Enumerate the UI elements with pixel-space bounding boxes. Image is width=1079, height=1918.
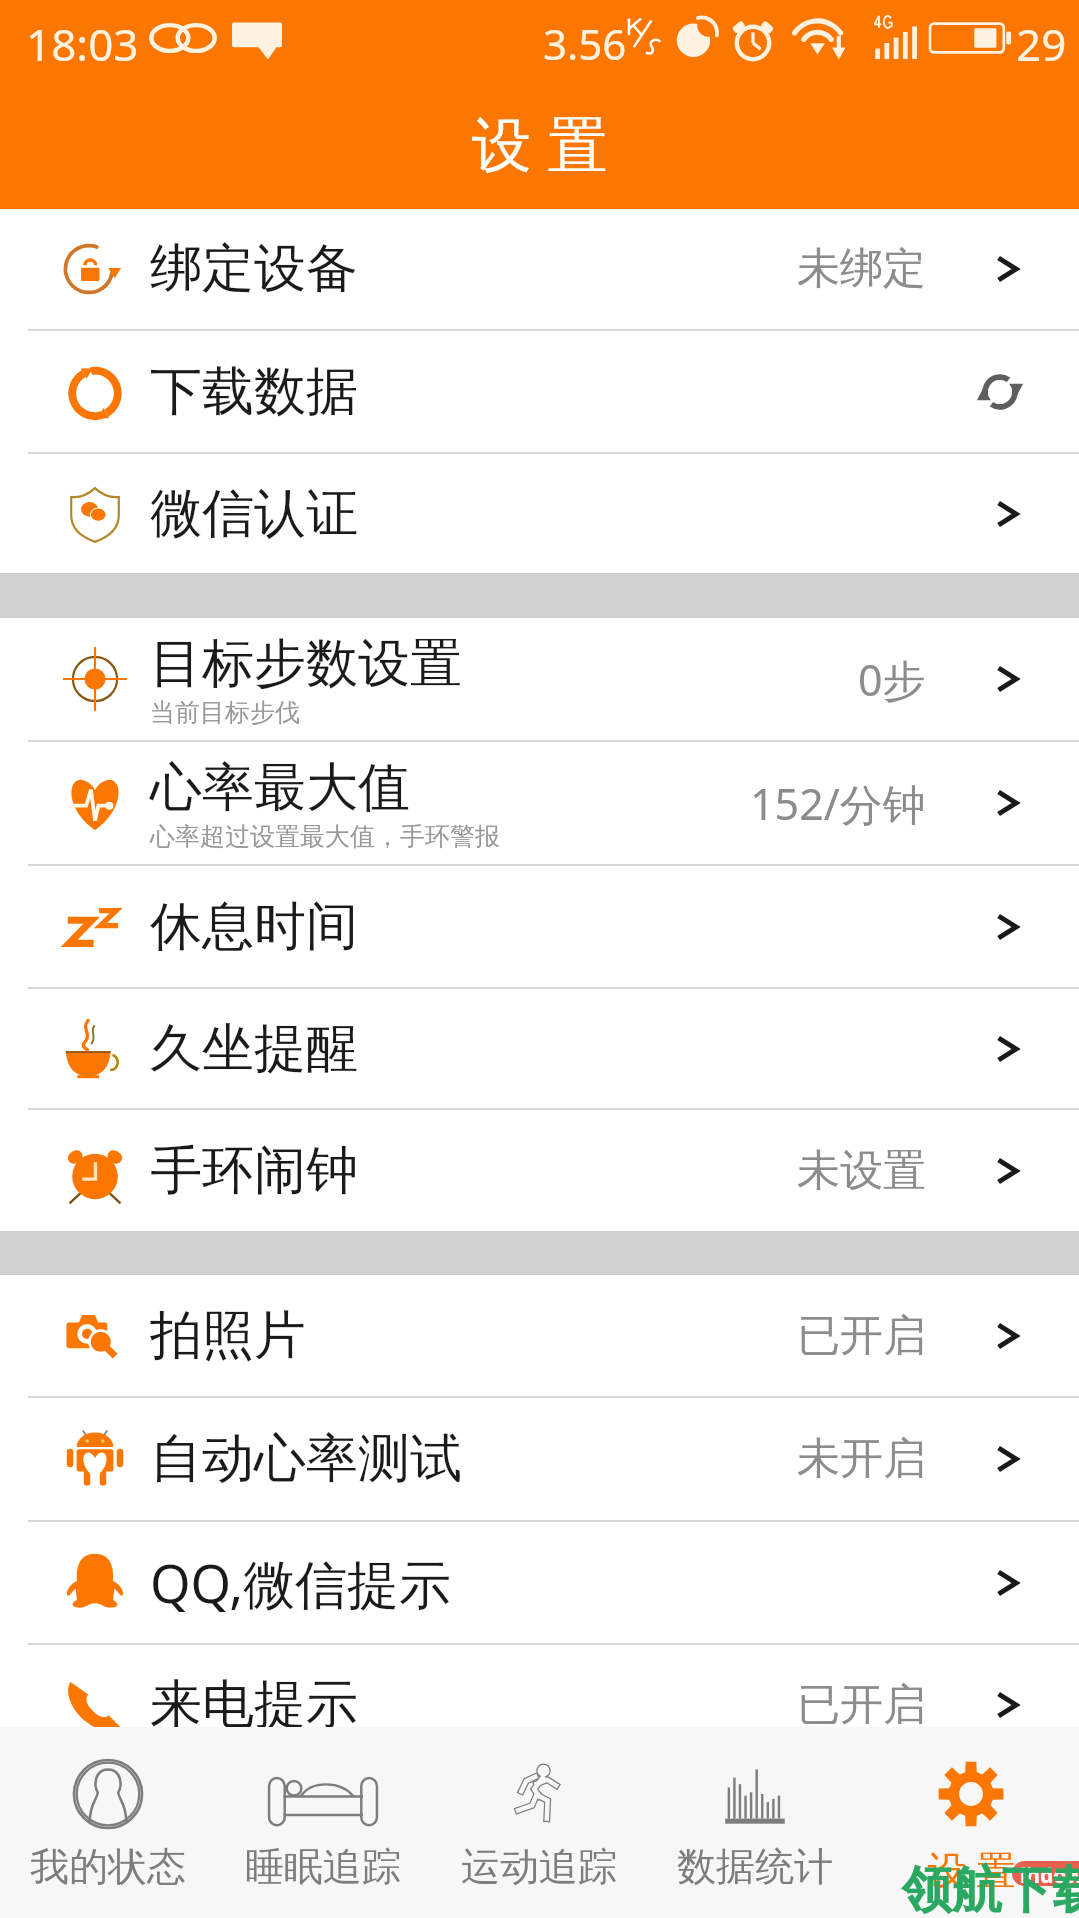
button[interactable]: 心率最大值: [0, 742, 1079, 864]
button[interactable]: 设 置: [863, 1727, 1079, 1918]
button[interactable]: 自动心率测试: [0, 1398, 1079, 1520]
staticText: 数据统计: [677, 1842, 833, 1891]
staticText: 我的状态: [30, 1842, 186, 1891]
button[interactable]: 绑定设备: [0, 209, 1079, 329]
staticText: 自动心率测试: [150, 1426, 462, 1492]
button[interactable]: 睡眠追踪: [215, 1727, 431, 1918]
button[interactable]: 休息时间: [0, 866, 1079, 987]
button[interactable]: 下载数据: [0, 331, 1079, 452]
staticText: 领航下载: [902, 1859, 1079, 1918]
staticText: 心率超过设置最大值，手环警报: [150, 821, 500, 852]
staticText: 拍照片: [150, 1303, 306, 1369]
button[interactable]: 数据统计: [647, 1727, 863, 1918]
button[interactable]: 来电提示: [0, 1645, 1079, 1765]
button[interactable]: QQ,微信提示: [0, 1522, 1079, 1643]
staticText: 休息时间: [150, 894, 358, 960]
button[interactable]: 目标步数设置: [0, 618, 1079, 740]
staticText: 目标步数设置: [150, 631, 462, 697]
staticText: 来电提示: [150, 1672, 358, 1738]
staticText: 29: [1016, 14, 1067, 74]
staticText: 下载数据: [150, 359, 358, 425]
staticText: lhdown.com: [1020, 1861, 1079, 1886]
staticText: 睡眠追踪: [245, 1842, 401, 1891]
button[interactable]: 我的状态: [0, 1727, 215, 1918]
staticText: 心率最大值: [150, 755, 410, 821]
staticText: 设 置: [472, 102, 608, 184]
staticText: 微信认证: [150, 481, 358, 547]
staticText: 未绑定: [797, 242, 926, 296]
button[interactable]: 运动追踪: [431, 1727, 647, 1918]
button[interactable]: 手环闹钟: [0, 1110, 1079, 1231]
staticText: 152/分钟: [750, 774, 926, 833]
button[interactable]: 拍照片: [0, 1275, 1079, 1396]
staticText: 18:03: [26, 14, 139, 74]
staticText: 手环闹钟: [150, 1138, 358, 1204]
staticText: 未开启: [797, 1432, 926, 1486]
button[interactable]: 微信认证: [0, 454, 1079, 573]
staticText: 已开启: [797, 1309, 926, 1363]
staticText: 运动追踪: [461, 1842, 617, 1891]
staticText: 久坐提醒: [150, 1016, 358, 1082]
staticText: 当前目标步伐: [150, 697, 300, 728]
staticText: 0步: [858, 650, 926, 709]
staticText: 绑定设备: [150, 236, 358, 302]
staticText: 设 置: [927, 1842, 1016, 1895]
staticText: QQ,微信提示: [150, 1547, 452, 1618]
button[interactable]: 久坐提醒: [0, 989, 1079, 1108]
staticText: 未设置: [797, 1144, 926, 1198]
other: 刷新: [979, 371, 1021, 413]
staticText: 3.56: [543, 15, 627, 72]
staticText: 已开启: [797, 1678, 926, 1732]
